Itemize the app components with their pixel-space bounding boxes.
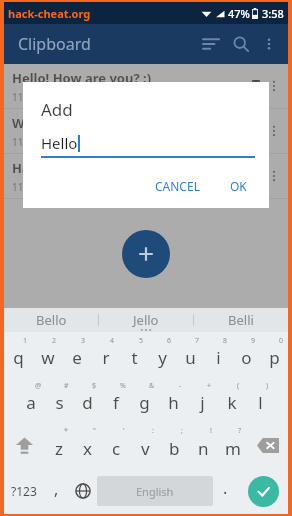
button[interactable]: Hello! How are you? :) — [4, 64, 288, 109]
staticText: 3 — [81, 336, 86, 346]
button[interactable]: * — [44, 422, 73, 468]
staticText: ? — [238, 426, 242, 436]
button[interactable]: ) — [246, 377, 275, 422]
button[interactable]: $ — [73, 377, 101, 422]
staticText: h — [168, 391, 179, 414]
staticText: p — [269, 346, 280, 369]
staticText: $ — [92, 381, 97, 391]
staticText: 9 — [251, 336, 256, 346]
button[interactable]: 2 — [33, 332, 62, 377]
button[interactable]: ' — [102, 422, 131, 468]
button[interactable]: : — [131, 422, 160, 468]
staticText: f — [113, 391, 119, 414]
staticText: 5 — [139, 336, 144, 346]
staticText: l — [258, 391, 263, 414]
staticText: d — [82, 391, 93, 414]
staticText: ; — [181, 426, 183, 436]
staticText: 2 — [52, 336, 57, 346]
button[interactable]: 1 — [4, 332, 33, 377]
button[interactable]: . — [213, 468, 238, 514]
button[interactable]: & — [130, 377, 159, 422]
staticText: " — [93, 426, 96, 436]
staticText: 8 — [223, 336, 228, 346]
staticText: u — [185, 346, 196, 369]
button[interactable]: OK — [222, 172, 255, 200]
button[interactable]: 7 — [176, 332, 204, 377]
staticText: @ — [35, 381, 42, 391]
staticText: m — [225, 437, 241, 460]
staticText: j — [200, 391, 205, 414]
staticText: k — [227, 391, 237, 414]
button[interactable]: Add — [122, 230, 170, 278]
staticText: What's up? — [12, 114, 83, 132]
button[interactable]: @ — [17, 377, 45, 422]
button[interactable]: 5 — [120, 332, 148, 377]
staticText: 7 — [195, 336, 200, 346]
staticText: + — [207, 381, 212, 391]
staticText: OK — [230, 178, 247, 194]
staticText: a — [26, 391, 36, 414]
button[interactable]: Shift — [4, 422, 44, 468]
button[interactable]: Haha, nice! — [4, 154, 288, 199]
button[interactable]: Bello — [4, 308, 98, 332]
button[interactable]: 4 — [91, 332, 120, 377]
staticText: ( — [237, 381, 240, 391]
button[interactable]: ? — [218, 422, 247, 468]
staticText: Bello — [36, 311, 67, 329]
staticText: Haha, nice! — [12, 159, 84, 177]
staticText: 11/13/18 3:56 PM — [12, 90, 94, 104]
staticText: ! — [210, 426, 212, 436]
button[interactable]: 3 — [62, 332, 91, 377]
button[interactable]: 8 — [204, 332, 232, 377]
button[interactable]: Item options — [266, 168, 282, 184]
button[interactable]: Item options — [266, 123, 282, 139]
button[interactable]: # — [45, 377, 73, 422]
button[interactable]: 0 — [260, 332, 288, 377]
button[interactable]: 9 — [232, 332, 260, 377]
staticText: z — [55, 437, 63, 460]
staticText: c — [112, 437, 121, 460]
staticText: : — [152, 426, 154, 436]
button[interactable]: Enter — [238, 468, 288, 514]
staticText: q — [13, 346, 24, 369]
staticText: Belli — [228, 311, 254, 329]
button[interactable]: What's up? — [4, 109, 288, 154]
staticText: s — [55, 391, 64, 414]
button[interactable]: CANCEL — [147, 172, 208, 200]
staticText: * — [64, 426, 68, 436]
button[interactable]: , — [44, 468, 69, 514]
button[interactable]: Belli — [194, 308, 288, 332]
button[interactable]: More options — [256, 31, 282, 57]
staticText: x — [83, 437, 92, 460]
button[interactable]: - — [159, 377, 188, 422]
staticText: , — [54, 478, 59, 500]
staticText: Hello — [41, 133, 78, 153]
button[interactable]: Search — [226, 29, 256, 59]
staticText: 11/13/18 3:55 PM — [12, 135, 94, 149]
button[interactable]: Jello — [99, 308, 193, 332]
staticText: - — [179, 381, 182, 391]
staticText: . — [223, 477, 228, 499]
button[interactable]: Item options — [266, 78, 282, 94]
button[interactable]: + — [188, 377, 217, 422]
button[interactable]: % — [101, 377, 130, 422]
staticText: 11/13/18 3:54 PM — [12, 180, 94, 194]
button[interactable]: Sort — [196, 29, 226, 59]
button[interactable]: English — [97, 476, 213, 506]
button[interactable]: Change language — [69, 468, 97, 514]
staticText: ' — [123, 426, 125, 436]
staticText: Add — [41, 98, 73, 121]
button[interactable]: 6 — [148, 332, 176, 377]
staticText: 21 chars — [204, 79, 244, 93]
staticText: 1 — [23, 336, 28, 346]
button[interactable]: ?123 — [4, 468, 44, 514]
staticText: ) — [266, 381, 269, 391]
button[interactable]: ( — [217, 377, 246, 422]
staticText: r — [102, 346, 110, 369]
button[interactable]: ; — [160, 422, 189, 468]
button[interactable]: " — [73, 422, 102, 468]
button[interactable]: Backspace — [247, 422, 288, 468]
button[interactable]: ! — [189, 422, 218, 468]
staticText: w — [41, 346, 55, 369]
staticText: 6 — [167, 336, 172, 346]
